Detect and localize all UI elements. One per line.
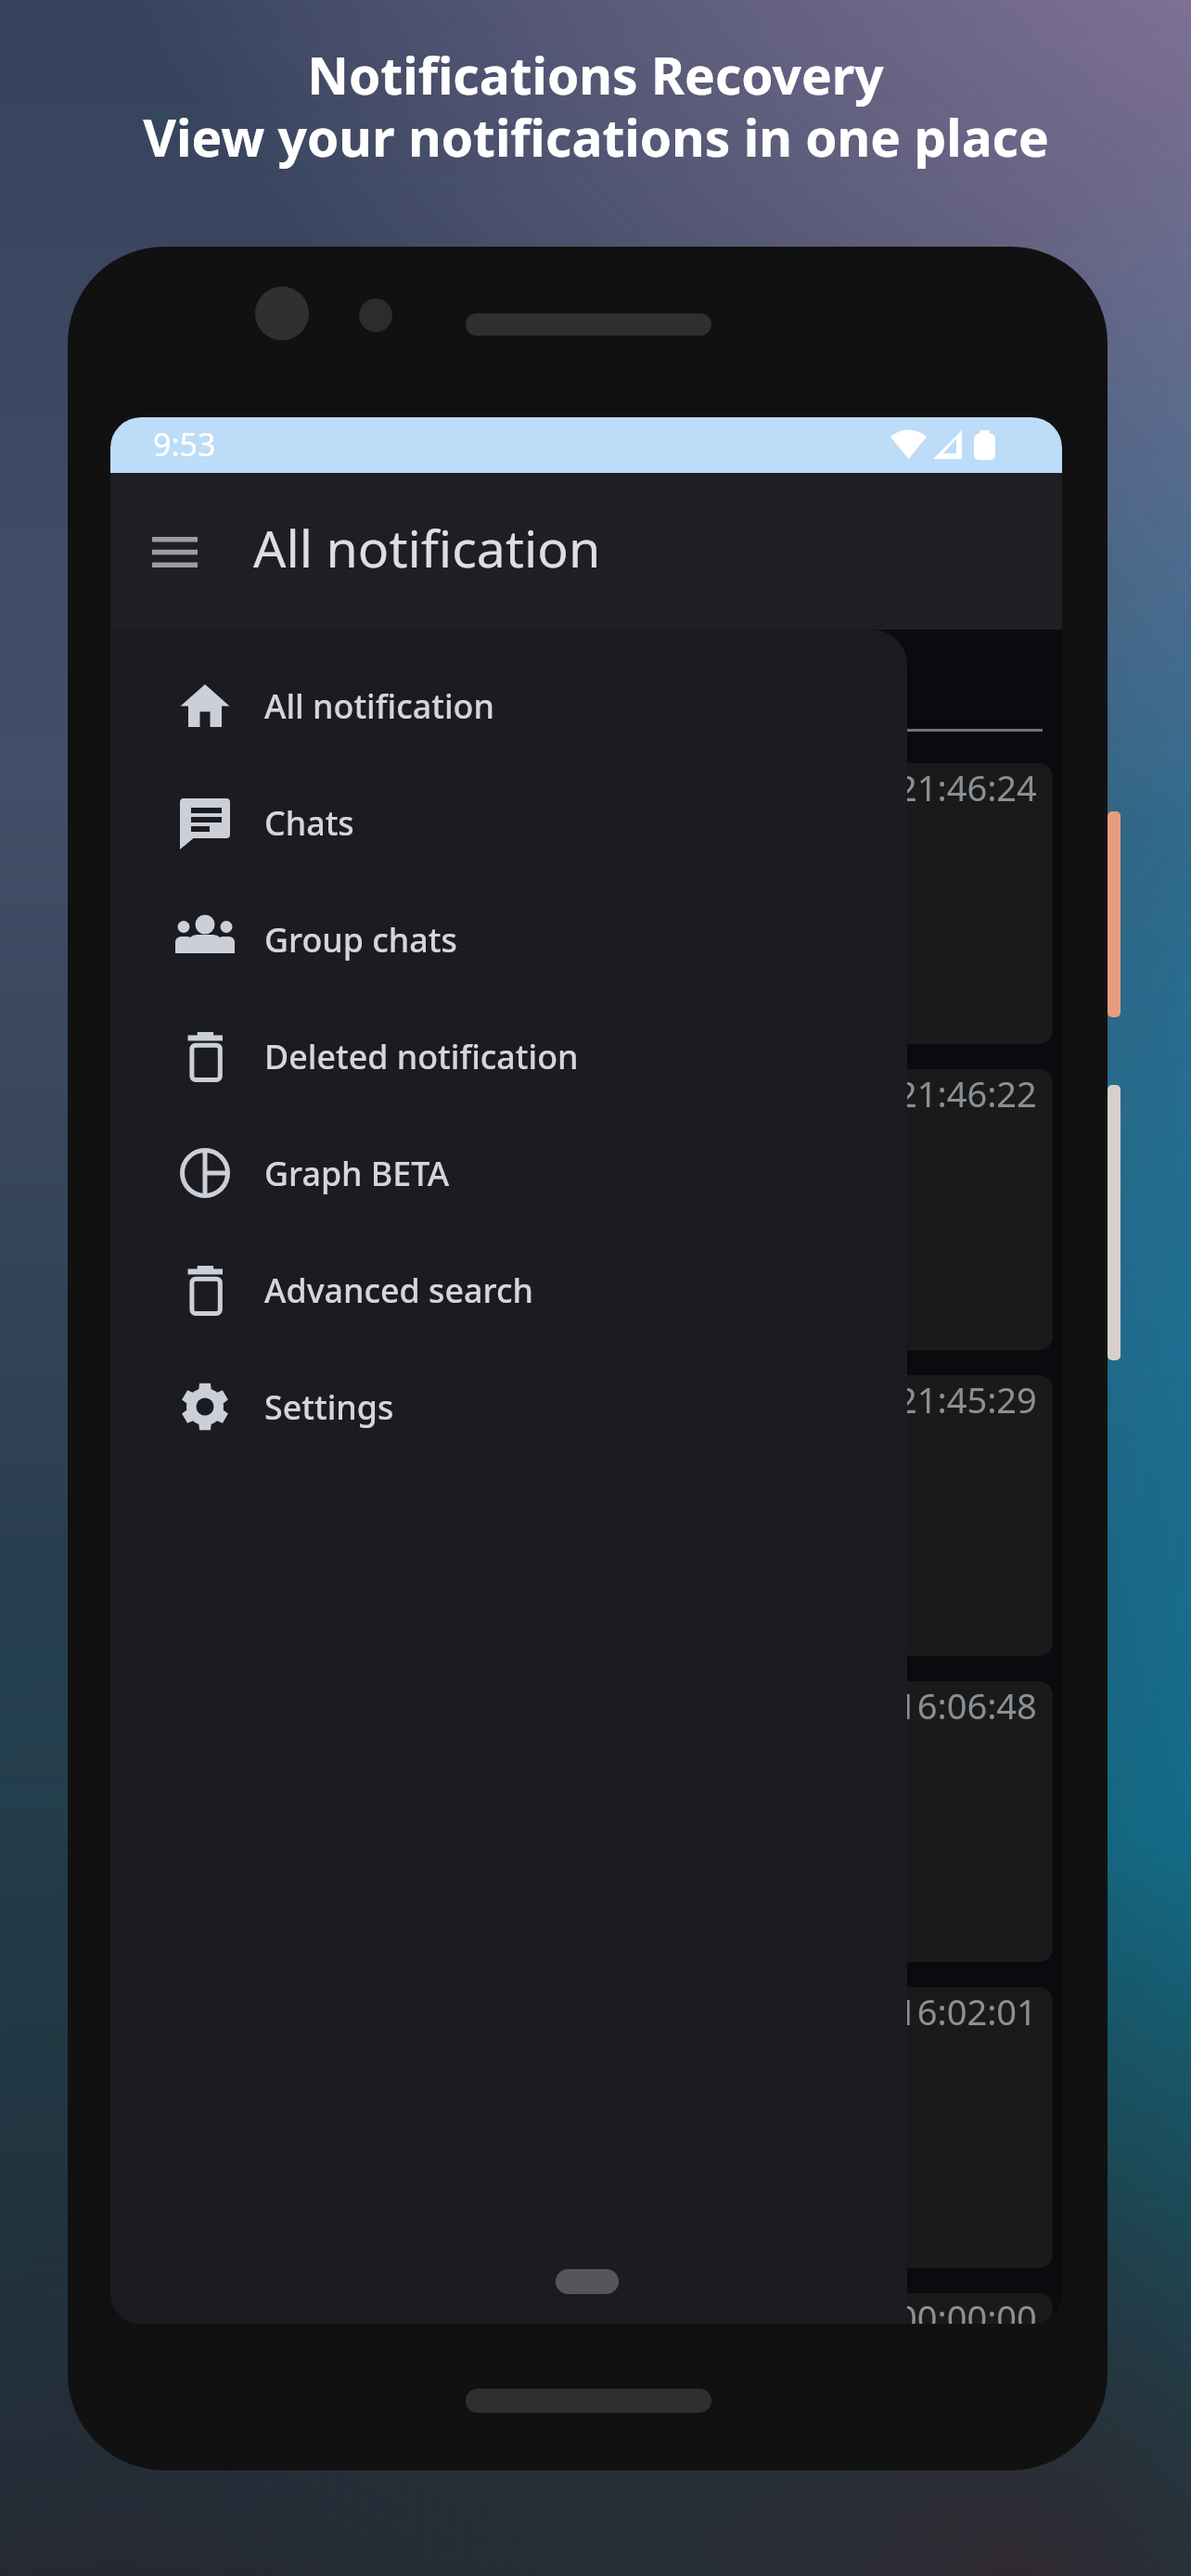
staticText: Graph BETA <box>264 1151 450 1196</box>
staticText: 00:00:00 <box>897 2293 1037 2324</box>
button[interactable]: 21:46:22 <box>120 1069 1053 1350</box>
staticText: Advanced search <box>264 1268 533 1313</box>
button[interactable]: 21:45:29 <box>120 1375 1053 1656</box>
button[interactable]: All notification <box>110 647 907 764</box>
staticText: 21:45:29 <box>897 1375 1037 1423</box>
staticText: 16:06:48 <box>897 1681 1037 1729</box>
button[interactable]: Graph BETA <box>110 1115 907 1231</box>
staticText: View your notifications in one place <box>143 102 1049 172</box>
staticText: Chats <box>264 800 354 846</box>
button[interactable]: Advanced search <box>110 1231 907 1348</box>
button[interactable]: Chats <box>110 764 907 881</box>
button[interactable]: 21:46:24 <box>120 763 1053 1044</box>
button[interactable]: 16:06:48 <box>120 1681 1053 1962</box>
staticText: Group chats <box>264 917 457 963</box>
button[interactable]: 00:00:00 <box>120 2293 1053 2324</box>
button[interactable]: Open navigation drawer <box>142 519 207 584</box>
staticText: Settings <box>264 1384 394 1430</box>
staticText: Deleted notification <box>264 1034 579 1079</box>
button[interactable]: 16:02:01 <box>120 1987 1053 2268</box>
button[interactable]: Deleted notification <box>110 998 907 1115</box>
staticText: 21:46:22 <box>897 1069 1037 1117</box>
button[interactable]: Group chats <box>110 881 907 998</box>
staticText: All notification <box>253 513 601 583</box>
staticText: 9:53 <box>153 423 216 465</box>
staticText: All notification <box>264 683 494 729</box>
staticText: Notifications Recovery <box>307 40 884 109</box>
button[interactable]: Settings <box>110 1348 907 1465</box>
staticText: 16:02:01 <box>897 1987 1037 2035</box>
staticText: 21:46:24 <box>897 763 1037 811</box>
